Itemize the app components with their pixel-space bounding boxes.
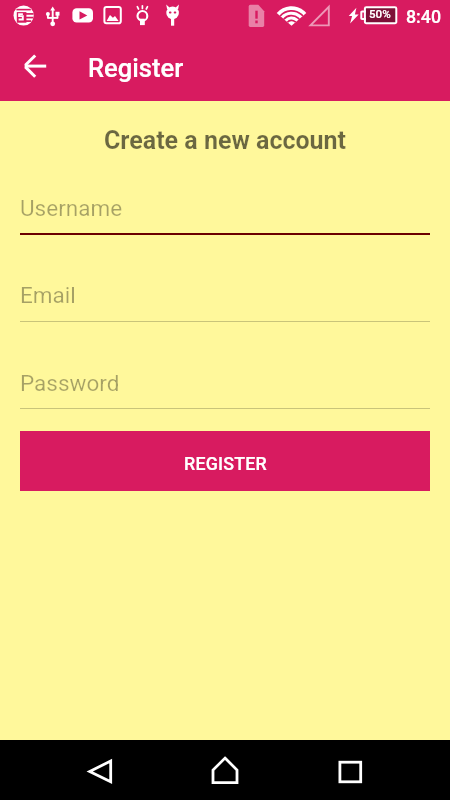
staticText: Email bbox=[20, 282, 76, 308]
staticText: Create a new account bbox=[0, 126, 450, 155]
staticText: REGISTER bbox=[184, 453, 267, 474]
button[interactable]: REGISTER bbox=[20, 431, 430, 491]
staticText: 8:40 bbox=[406, 6, 442, 27]
button[interactable]: Recent apps bbox=[318, 740, 382, 800]
button[interactable]: Back bbox=[68, 740, 132, 800]
button[interactable]: Home bbox=[193, 740, 257, 800]
staticText: Password bbox=[20, 370, 120, 396]
button[interactable]: Username bbox=[0, 181, 450, 241]
staticText: Register bbox=[88, 53, 184, 83]
button[interactable]: Email bbox=[0, 268, 450, 329]
staticText: 50% bbox=[369, 7, 391, 21]
button[interactable]: Password bbox=[0, 356, 450, 416]
button[interactable]: Back bbox=[12, 42, 60, 90]
staticText: Username bbox=[20, 195, 123, 221]
